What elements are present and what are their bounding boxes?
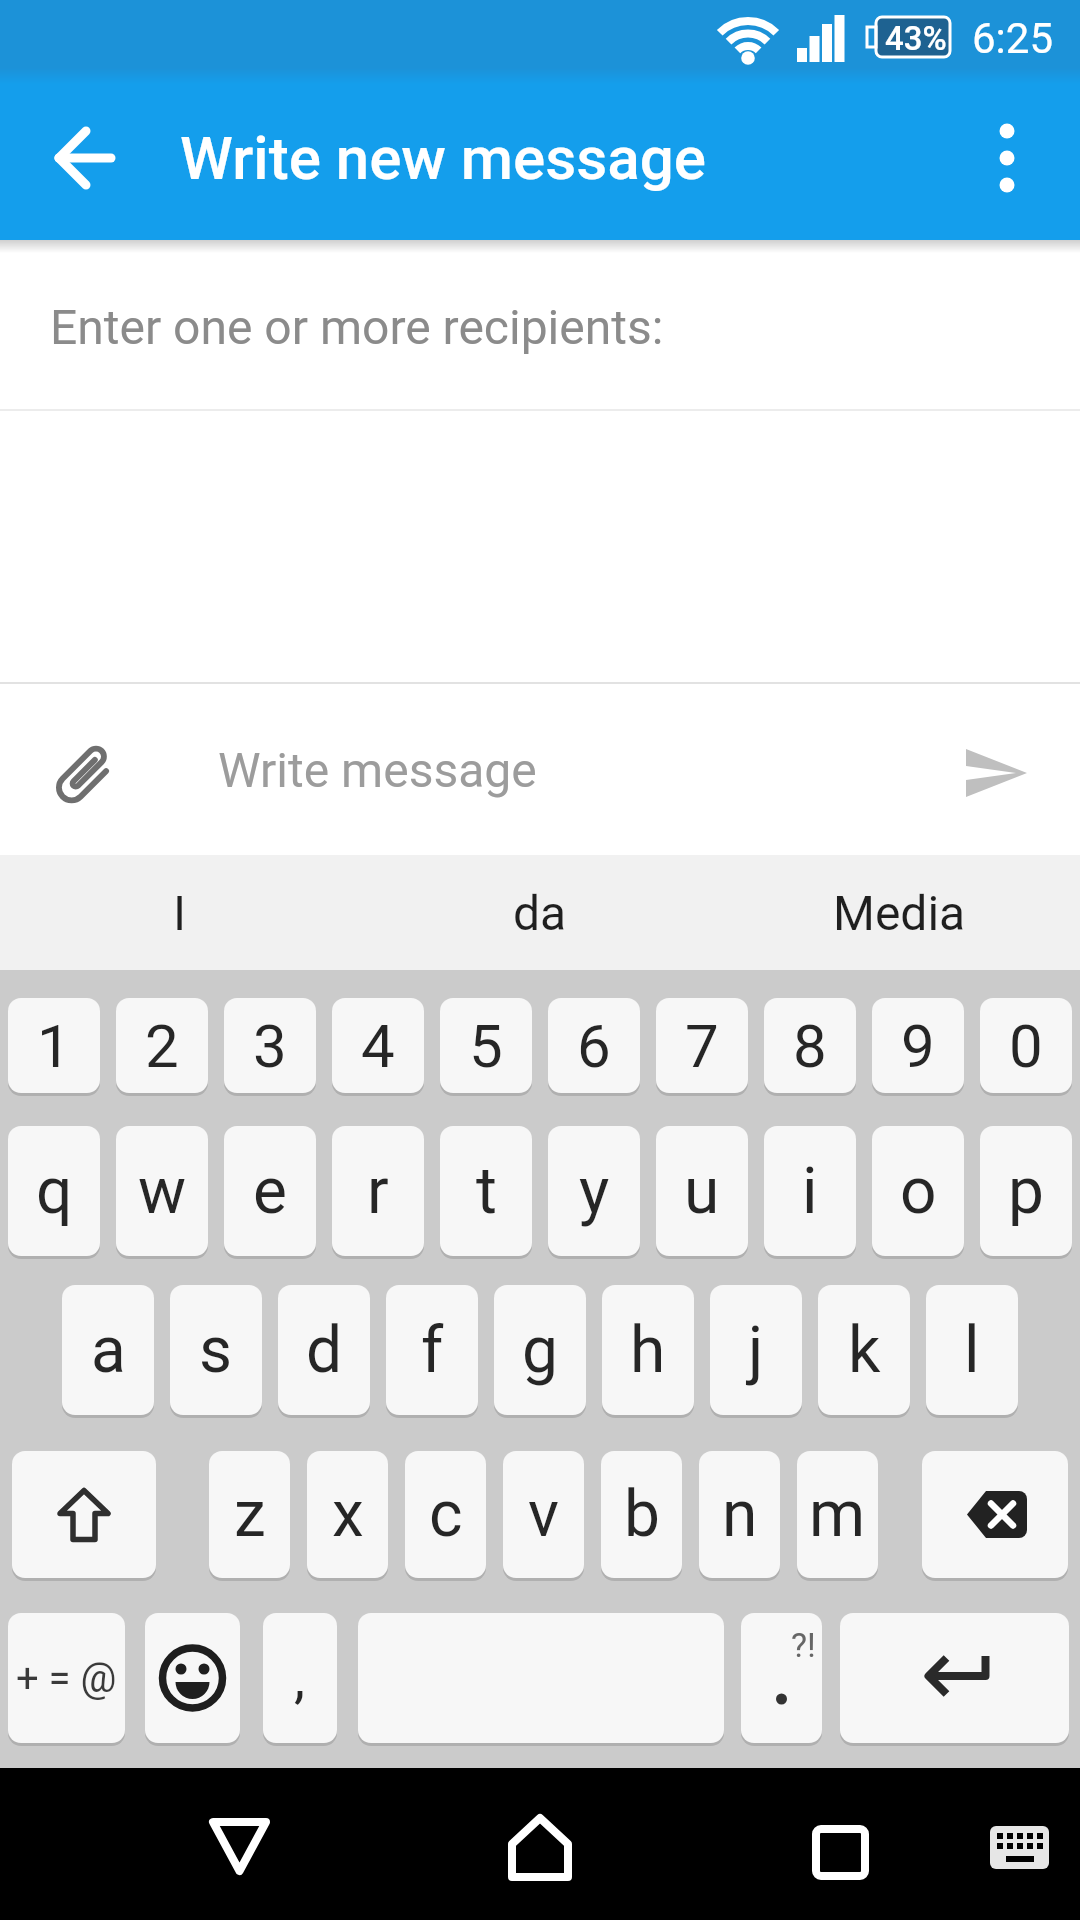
button[interactable] <box>940 734 1050 810</box>
button[interactable]: 7 <box>656 998 748 1093</box>
button[interactable]: ?! <box>741 1613 822 1743</box>
staticText: 9 <box>901 1011 935 1081</box>
staticText: y <box>579 1154 610 1229</box>
button[interactable]: 5 <box>440 998 532 1093</box>
button[interactable]: Media <box>779 855 1019 970</box>
staticText: g <box>522 1313 558 1388</box>
button[interactable]: e <box>224 1126 316 1256</box>
button[interactable]: Write message <box>218 684 918 855</box>
staticText: 6:25 <box>972 14 1053 63</box>
button[interactable]: Enter one or more recipients: <box>0 252 1080 410</box>
staticText: r <box>367 1154 389 1229</box>
staticText: e <box>253 1154 287 1229</box>
staticText: b <box>624 1477 660 1552</box>
button[interactable] <box>840 1613 1069 1743</box>
button[interactable] <box>145 1613 240 1743</box>
staticText: h <box>630 1313 666 1388</box>
button[interactable]: g <box>494 1285 586 1415</box>
button[interactable]: 4 <box>332 998 424 1093</box>
button[interactable]: I <box>60 855 300 970</box>
button[interactable]: da <box>420 855 660 970</box>
button[interactable]: + = @ <box>8 1613 125 1743</box>
button[interactable]: z <box>209 1451 290 1578</box>
staticText: o <box>900 1154 937 1229</box>
staticText: 7 <box>685 1011 719 1081</box>
staticText: 1 <box>37 1011 71 1081</box>
button[interactable] <box>485 1788 595 1898</box>
button[interactable]: , <box>263 1613 337 1743</box>
staticText: 6 <box>577 1011 611 1081</box>
button[interactable]: 1 <box>8 998 100 1093</box>
button[interactable] <box>975 1808 1065 1878</box>
button[interactable]: s <box>170 1285 262 1415</box>
button[interactable]: k <box>818 1285 910 1415</box>
button[interactable]: o <box>872 1126 964 1256</box>
button[interactable] <box>48 737 120 809</box>
staticText: p <box>1008 1154 1044 1229</box>
staticText: n <box>722 1477 758 1552</box>
button[interactable]: x <box>307 1451 388 1578</box>
staticText: l <box>964 1313 980 1388</box>
staticText: da <box>513 885 567 941</box>
button[interactable]: n <box>699 1451 780 1578</box>
staticText: 3 <box>253 1011 287 1081</box>
staticText: 43% <box>885 19 947 58</box>
button[interactable]: 8 <box>764 998 856 1093</box>
button[interactable] <box>785 1788 895 1898</box>
button[interactable] <box>185 1788 295 1898</box>
button[interactable] <box>12 1451 156 1578</box>
button[interactable]: 2 <box>116 998 208 1093</box>
button[interactable]: q <box>8 1126 100 1256</box>
staticText: w <box>138 1154 187 1229</box>
button[interactable]: f <box>386 1285 478 1415</box>
staticText: m <box>809 1477 866 1552</box>
button[interactable] <box>922 1451 1068 1578</box>
staticText: c <box>429 1477 463 1552</box>
button[interactable]: b <box>601 1451 682 1578</box>
staticText: t <box>476 1154 497 1229</box>
button[interactable]: t <box>440 1126 532 1256</box>
staticText: k <box>848 1313 881 1388</box>
button[interactable]: 9 <box>872 998 964 1093</box>
staticText: v <box>528 1477 559 1552</box>
button[interactable]: 6 <box>548 998 640 1093</box>
button[interactable]: h <box>602 1285 694 1415</box>
button[interactable]: m <box>797 1451 878 1578</box>
staticText: Media <box>833 885 966 941</box>
button[interactable]: 3 <box>224 998 316 1093</box>
staticText: I <box>173 885 187 941</box>
button[interactable] <box>957 108 1057 208</box>
staticText: ?! <box>791 1625 816 1665</box>
button[interactable]: i <box>764 1126 856 1256</box>
staticText: f <box>421 1313 444 1388</box>
staticText: j <box>748 1313 764 1388</box>
staticText: 0 <box>1009 1011 1043 1081</box>
staticText: i <box>802 1154 818 1229</box>
button[interactable]: p <box>980 1126 1072 1256</box>
staticText: d <box>306 1313 343 1388</box>
button[interactable]: v <box>503 1451 584 1578</box>
staticText: Write message <box>218 742 537 798</box>
button[interactable] <box>35 108 135 208</box>
staticText: q <box>36 1154 73 1229</box>
button[interactable]: r <box>332 1126 424 1256</box>
staticText: a <box>91 1313 126 1388</box>
button[interactable]: l <box>926 1285 1018 1415</box>
button[interactable]: j <box>710 1285 802 1415</box>
button[interactable]: y <box>548 1126 640 1256</box>
staticText: s <box>199 1313 233 1388</box>
staticText: , <box>294 1645 306 1711</box>
staticText: Write new message <box>180 123 706 193</box>
button[interactable]: 0 <box>980 998 1072 1093</box>
button[interactable]: w <box>116 1126 208 1256</box>
button[interactable]: u <box>656 1126 748 1256</box>
staticText: 8 <box>793 1011 827 1081</box>
button[interactable]: a <box>62 1285 154 1415</box>
staticText: 5 <box>469 1011 503 1081</box>
button[interactable]: c <box>405 1451 486 1578</box>
button[interactable]: d <box>278 1285 370 1415</box>
staticText: x <box>332 1477 364 1552</box>
staticText: 2 <box>145 1011 179 1081</box>
staticText: u <box>684 1154 720 1229</box>
